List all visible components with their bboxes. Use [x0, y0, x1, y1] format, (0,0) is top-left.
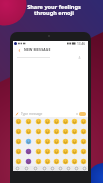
button[interactable]: Emoji — [33, 156, 43, 166]
button[interactable]: Emoji — [43, 117, 52, 126]
button[interactable]: Emoji — [61, 126, 70, 136]
button[interactable]: Emoji — [70, 126, 79, 136]
button[interactable]: Category — [31, 166, 40, 171]
button[interactable]: Emoji — [52, 136, 61, 146]
button[interactable]: Emoji — [52, 126, 61, 136]
button[interactable]: Emoji — [70, 117, 79, 126]
button[interactable]: Emoji — [61, 117, 70, 126]
button[interactable]: Emoji — [79, 126, 88, 136]
staticText: Type message — [21, 112, 43, 116]
button[interactable]: Emoji — [70, 136, 79, 146]
button[interactable]: Emoji — [79, 136, 88, 146]
other: Attach — [15, 112, 19, 116]
button[interactable]: Category — [72, 166, 80, 171]
button[interactable]: Emoji — [61, 146, 70, 156]
button[interactable]: Send — [79, 112, 86, 116]
button[interactable]: Category — [40, 166, 48, 171]
button[interactable]: Emoji — [13, 156, 23, 166]
button[interactable]: Emoji — [23, 126, 33, 136]
button[interactable]: Emoji — [79, 117, 88, 126]
button[interactable]: Emoji — [52, 117, 61, 126]
button[interactable]: Emoji — [52, 146, 61, 156]
button[interactable]: Emoji — [23, 117, 33, 126]
staticText: 13:46 — [77, 42, 86, 46]
button[interactable]: Back — [16, 47, 22, 53]
button[interactable]: NEW MESSAGE — [24, 47, 51, 52]
button[interactable]: Emoji — [43, 126, 52, 136]
button[interactable]: Emoji — [43, 146, 52, 156]
button[interactable]: Category — [22, 166, 31, 171]
button[interactable]: Emoji — [33, 146, 43, 156]
button[interactable]: Category — [80, 166, 88, 171]
button[interactable]: Emoji — [52, 156, 61, 166]
button[interactable]: Emoji — [43, 136, 52, 146]
button[interactable]: Emoji — [33, 117, 43, 126]
button[interactable]: Category — [56, 166, 64, 171]
button[interactable]: More — [75, 112, 79, 116]
button[interactable]: Category — [48, 166, 56, 171]
button[interactable]: Emoji — [13, 146, 23, 156]
staticText: Share your feelings through emoji — [27, 3, 81, 17]
button[interactable]: Category — [64, 166, 72, 171]
button[interactable]: Emoji — [23, 146, 33, 156]
button[interactable]: Emoji — [13, 126, 23, 136]
button[interactable]: Emoji — [23, 156, 33, 166]
button[interactable]: Emoji — [61, 156, 70, 166]
button[interactable]: Emoji — [79, 156, 88, 166]
button[interactable]: Emoji — [33, 136, 43, 146]
button[interactable]: Emoji — [70, 146, 79, 156]
button[interactable]: Emoji — [33, 126, 43, 136]
button[interactable]: Emoji — [13, 117, 23, 126]
button[interactable]: Add contact — [77, 55, 82, 60]
button[interactable]: Emoji — [79, 146, 88, 156]
button[interactable]: Emoji — [43, 156, 52, 166]
button[interactable]: Emoji — [70, 156, 79, 166]
button[interactable]: Emoji — [13, 136, 23, 146]
button[interactable]: Category — [13, 166, 22, 171]
button[interactable]: Emoji — [23, 136, 33, 146]
button[interactable]: Emoji — [61, 136, 70, 146]
